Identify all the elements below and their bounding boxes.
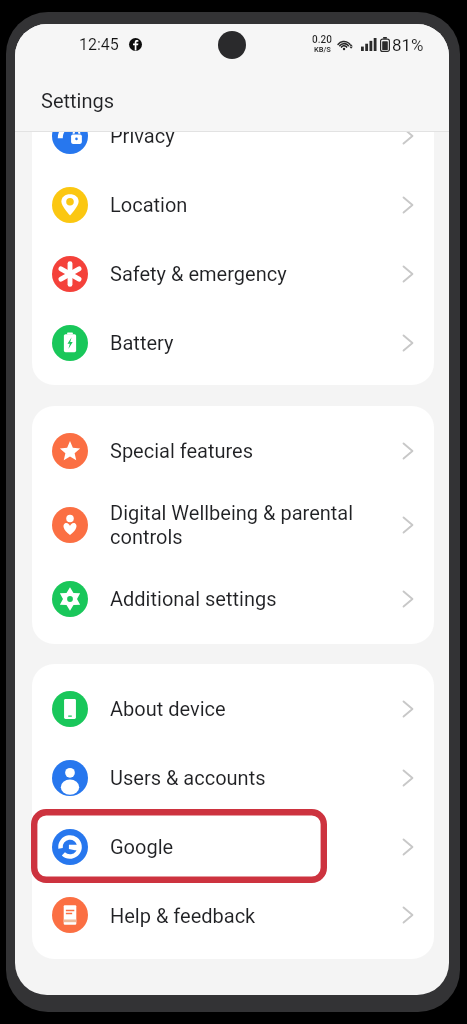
button[interactable]: Special features [32,416,434,485]
staticText: Safety & emergency [110,262,380,285]
button[interactable]: Privacy [32,132,434,170]
staticText: 81% [392,35,424,55]
button[interactable]: Users & accounts [32,743,434,812]
button[interactable]: Digital Wellbeing & parental controls [32,485,434,564]
button[interactable]: Additional settings [32,564,434,633]
staticText: Additional settings [110,587,380,610]
staticText: 12:45 [79,35,119,54]
staticText: Privacy [110,132,380,147]
staticText: 0.20 [312,34,332,46]
staticText: About device [110,697,380,720]
staticText: Users & accounts [110,766,380,789]
button[interactable]: Help & feedback [32,881,434,949]
button[interactable]: Safety & emergency [32,239,434,308]
button[interactable]: Battery [32,308,434,377]
staticText: Special features [110,439,380,462]
staticText: Digital Wellbeing & parental controls [110,501,380,549]
button[interactable]: Google [32,812,434,881]
staticText: Google [110,835,380,858]
staticText: Battery [110,331,380,354]
staticText: Help & feedback [110,904,380,927]
staticText: Settings [41,89,115,112]
button[interactable]: Location [32,170,434,239]
staticText: Location [110,193,380,216]
button[interactable]: About device [32,674,434,743]
staticText: KB/S [314,45,331,54]
